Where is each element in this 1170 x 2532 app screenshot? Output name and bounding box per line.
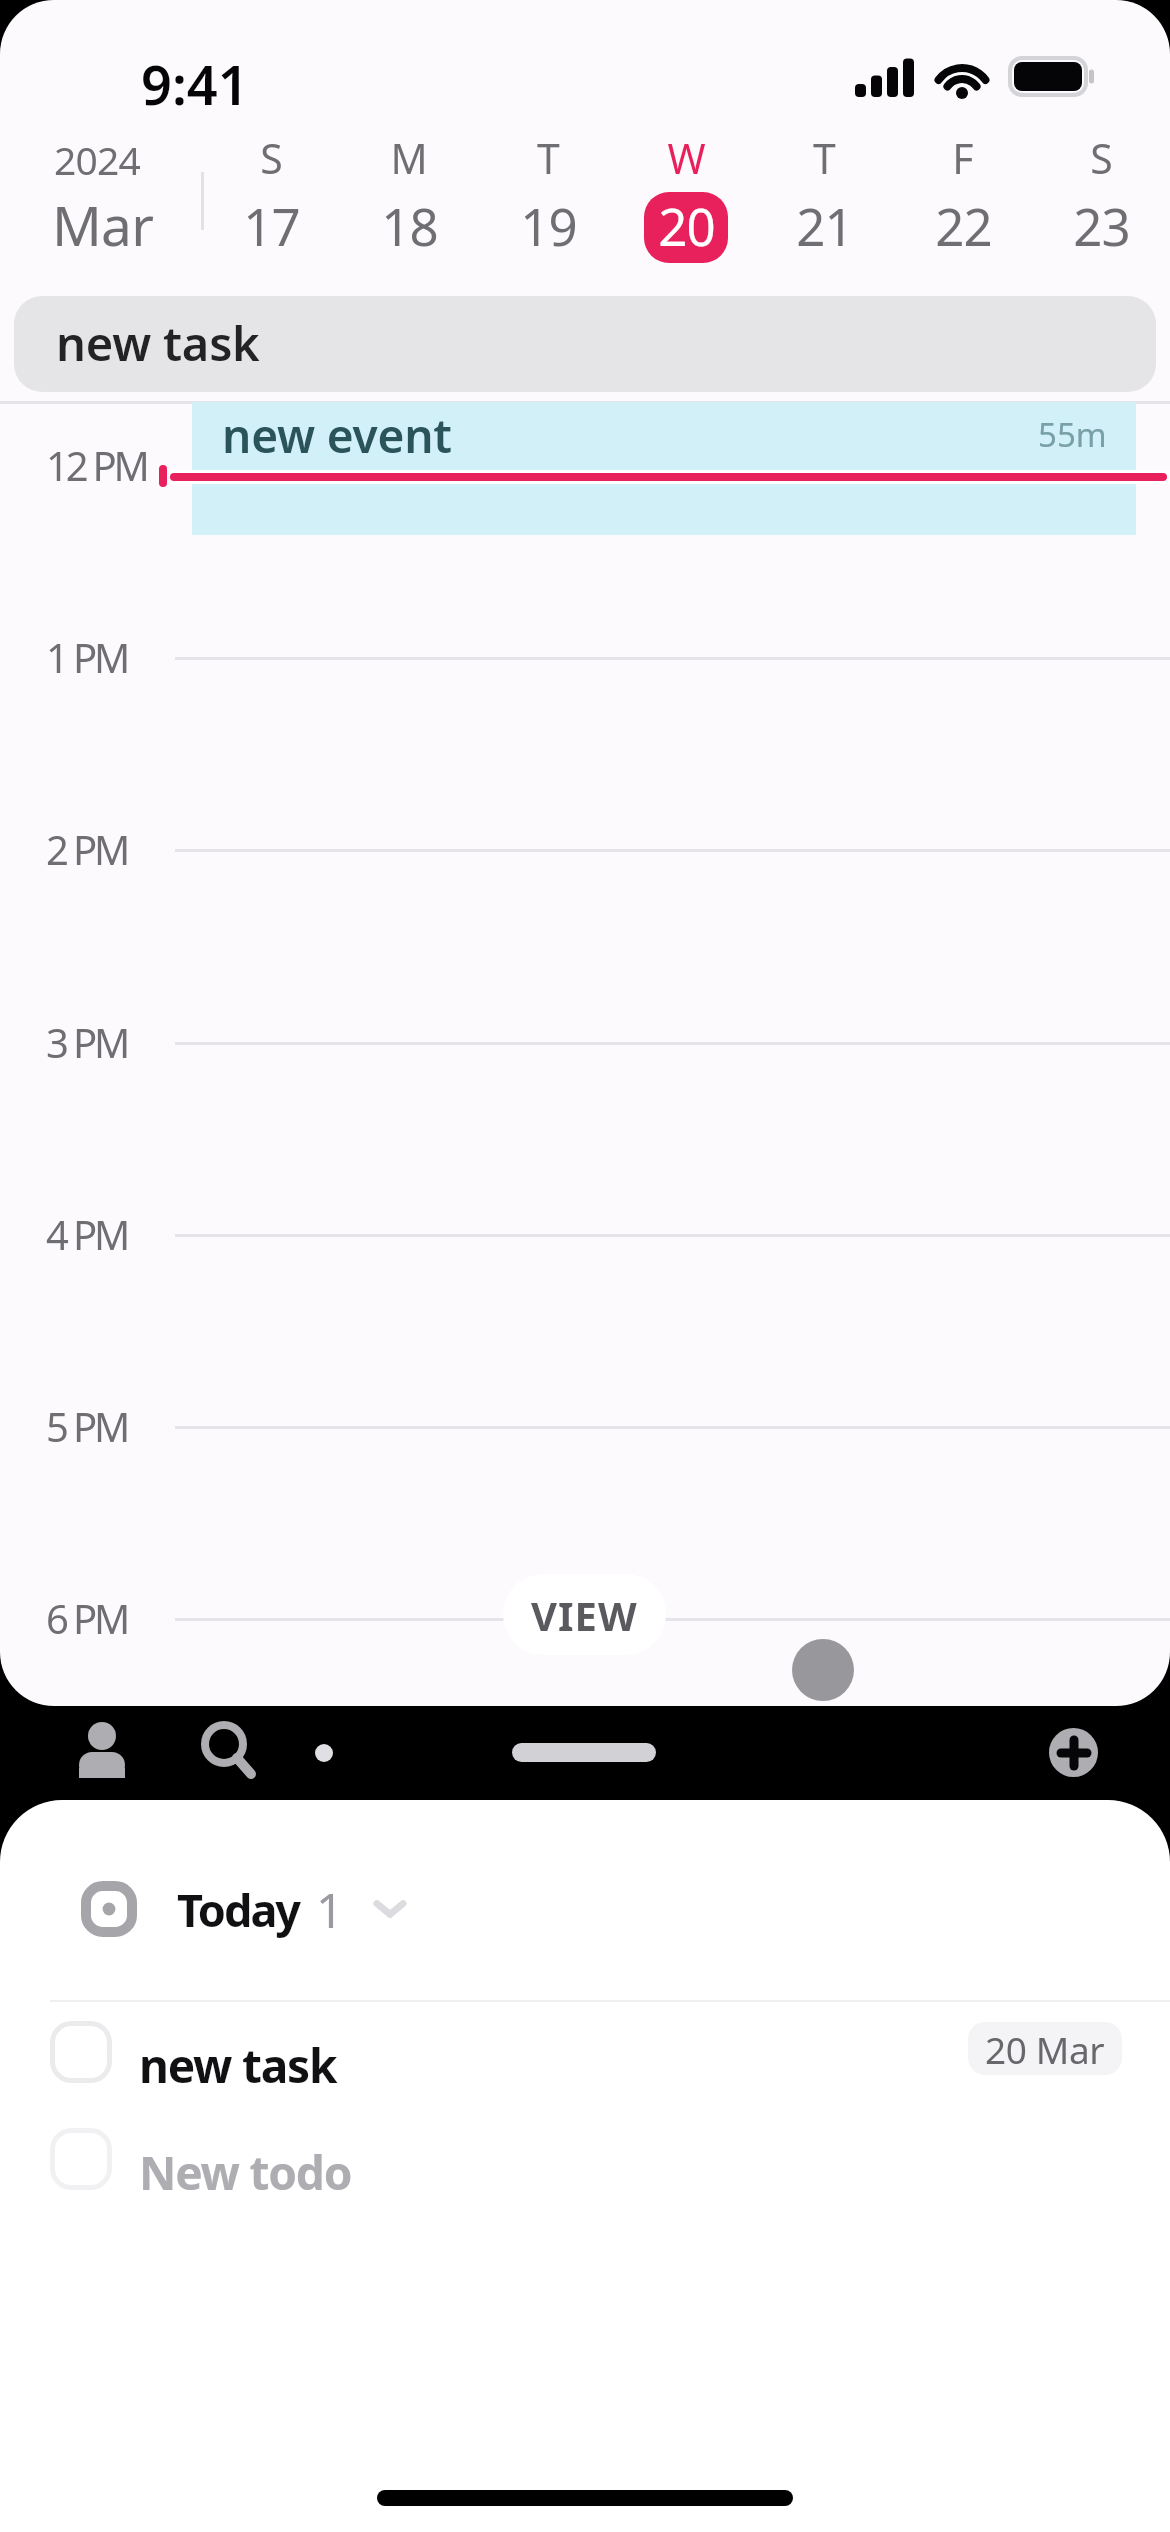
staticText: 2024 <box>54 133 141 186</box>
staticText: S <box>260 130 283 186</box>
button[interactable]: T <box>755 110 893 290</box>
staticText: 22 <box>935 192 992 260</box>
staticText: 3 PM <box>46 1015 127 1069</box>
button[interactable]: S <box>202 110 340 290</box>
staticText: 5 PM <box>46 1399 127 1453</box>
staticText: S <box>1090 130 1113 186</box>
staticText: new task <box>139 2034 337 2097</box>
button[interactable]: new task <box>0 2021 1170 2128</box>
button[interactable]: Account <box>66 1714 138 1786</box>
button[interactable]: New todo <box>0 2128 1170 2235</box>
staticText: 55m <box>1038 412 1107 457</box>
button[interactable]: Add <box>1049 1728 1098 1777</box>
button[interactable]: new event <box>192 402 1136 535</box>
staticText: 9:41 <box>141 47 249 121</box>
staticText: Today <box>177 1879 300 1940</box>
button[interactable]: W <box>617 110 755 290</box>
staticText: VIEW <box>531 1588 638 1642</box>
button[interactable]: F <box>894 110 1032 290</box>
staticText: new event <box>222 404 452 467</box>
staticText: 23 <box>1073 192 1130 260</box>
button[interactable]: Drag handle <box>792 1639 854 1701</box>
staticText: Mar <box>52 187 154 262</box>
button[interactable]: Search <box>193 1714 265 1786</box>
staticText: 19 <box>520 192 577 260</box>
staticText: 6 PM <box>46 1591 127 1645</box>
staticText: 1 <box>316 1877 344 1942</box>
staticText: W <box>667 130 706 186</box>
staticText: 1 PM <box>46 630 127 684</box>
staticText: 4 PM <box>46 1207 127 1261</box>
staticText: 17 <box>243 192 300 260</box>
staticText: new task <box>56 311 260 375</box>
staticText: 20 <box>658 192 715 260</box>
button[interactable]: S <box>1032 110 1170 290</box>
button[interactable]: M <box>340 110 478 290</box>
button[interactable]: Today <box>0 1849 1170 1969</box>
staticText: 12 PM <box>46 438 147 492</box>
staticText: 18 <box>381 192 438 260</box>
staticText: F <box>952 130 974 186</box>
staticText: 20 Mar <box>985 2024 1105 2074</box>
staticText: T <box>537 130 560 186</box>
staticText: New todo <box>139 2141 352 2204</box>
staticText: T <box>813 130 836 186</box>
staticText: 2 PM <box>46 822 127 876</box>
button[interactable]: VIEW <box>503 1574 666 1655</box>
staticText: M <box>390 130 428 186</box>
button[interactable]: T <box>479 110 617 290</box>
button[interactable]: new task <box>14 296 1156 392</box>
staticText: 21 <box>796 192 853 260</box>
